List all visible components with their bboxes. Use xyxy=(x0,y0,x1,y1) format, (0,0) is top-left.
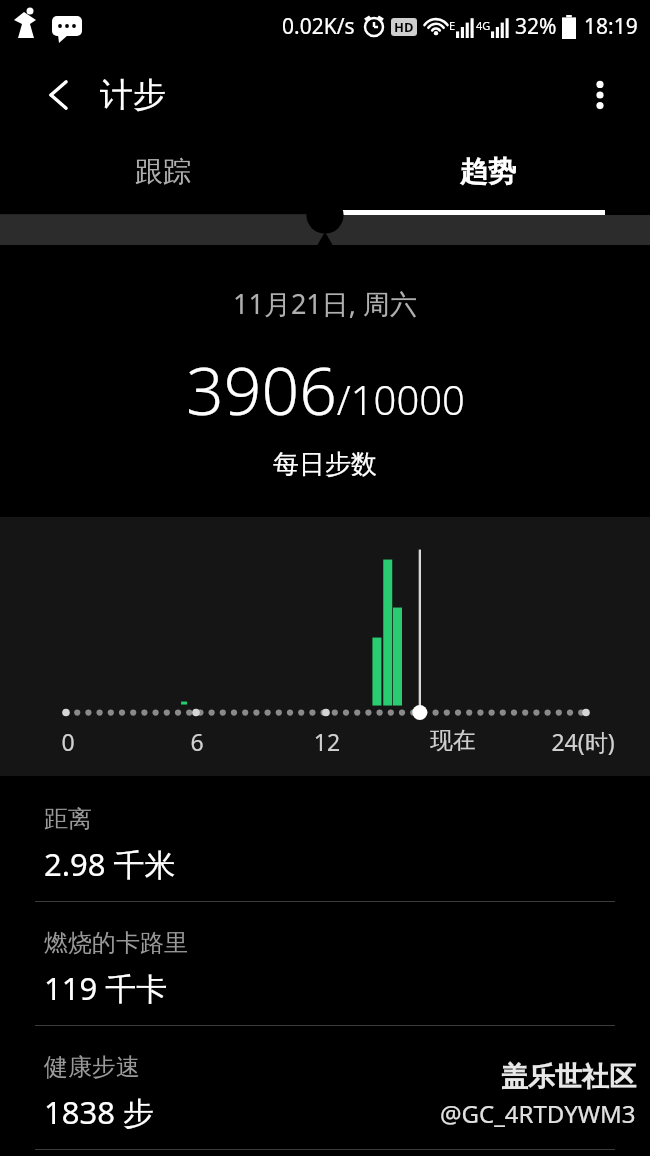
button[interactable]: 跟踪 xyxy=(0,137,325,215)
staticText: 4G xyxy=(476,18,491,33)
staticText: 现在 xyxy=(411,726,495,755)
staticText: @GC_4RTDYWM3 xyxy=(440,1097,636,1130)
staticText: 32% xyxy=(515,12,557,41)
button[interactable]: Back xyxy=(34,73,78,117)
staticText: 盖乐世社区 xyxy=(501,1060,636,1094)
staticText: HD xyxy=(394,18,414,36)
staticText: 燃烧的卡路里 xyxy=(44,928,188,958)
button[interactable]: 健康步速 xyxy=(0,1026,650,1149)
staticText: 24(时) xyxy=(541,726,625,757)
staticText: 距离 xyxy=(44,804,92,834)
staticText: 每日步数 xyxy=(273,448,377,481)
staticText: 1838 步 xyxy=(44,1091,154,1133)
staticText: 3906/10000 xyxy=(186,344,465,434)
staticText: 趋势 xyxy=(460,154,516,189)
button[interactable]: More options xyxy=(576,71,624,119)
staticText: 12 xyxy=(285,726,369,757)
staticText: 计步 xyxy=(100,74,166,116)
staticText: 0 xyxy=(26,726,110,757)
staticText: 6 xyxy=(155,726,239,757)
staticText: E xyxy=(449,18,456,33)
staticText: 0.02K/s xyxy=(282,12,355,41)
staticText: 健康步速 xyxy=(44,1052,140,1082)
staticText: 2.98 千米 xyxy=(44,843,176,885)
staticText: 18:19 xyxy=(584,12,638,41)
staticText: 跟踪 xyxy=(135,154,191,189)
staticText: 119 千卡 xyxy=(44,967,168,1009)
button[interactable]: 燃烧的卡路里 xyxy=(0,902,650,1025)
staticText: 11月21日, 周六 xyxy=(233,285,418,322)
button[interactable]: 距离 xyxy=(0,776,650,901)
button[interactable]: 趋势 xyxy=(325,137,650,215)
